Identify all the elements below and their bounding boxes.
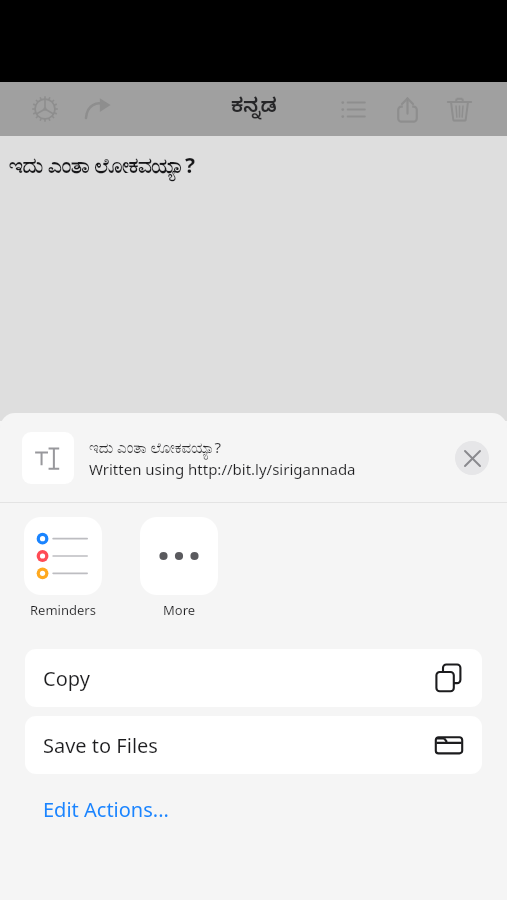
button[interactable]: Edit Actions...	[0, 781, 507, 837]
staticText: ಕನ್ನಡ	[231, 96, 277, 123]
button[interactable]: Delete	[441, 91, 477, 127]
staticText: ಇದು ಎಂತಾ ಲೋಕವಯ್ಯಾ?	[89, 437, 222, 457]
button[interactable]: Settings	[27, 91, 63, 127]
button[interactable]: ಇದು ಎಂತಾ ಲೋಕವಯ್ಯಾ?	[0, 413, 507, 502]
button[interactable]: Close	[455, 441, 489, 475]
staticText: Edit Actions...	[43, 796, 169, 823]
staticText: Save to Files	[43, 732, 158, 759]
staticText: Written using http://bit.ly/sirigannada	[89, 459, 356, 479]
staticText: Reminders	[30, 601, 96, 619]
staticText: ಇದು ಎಂತಾ ಲೋಕವಯ್ಯಾ?	[9, 151, 195, 180]
button[interactable]: List	[335, 91, 371, 127]
button[interactable]: Copy	[25, 649, 482, 707]
staticText: Copy	[43, 665, 90, 692]
button[interactable]: Reminders	[24, 517, 102, 619]
button[interactable]: Redo	[80, 91, 116, 127]
button[interactable]: Share	[389, 91, 425, 127]
button[interactable]: Save to Files	[25, 716, 482, 774]
staticText: More	[163, 601, 196, 619]
button[interactable]: More	[140, 517, 218, 619]
